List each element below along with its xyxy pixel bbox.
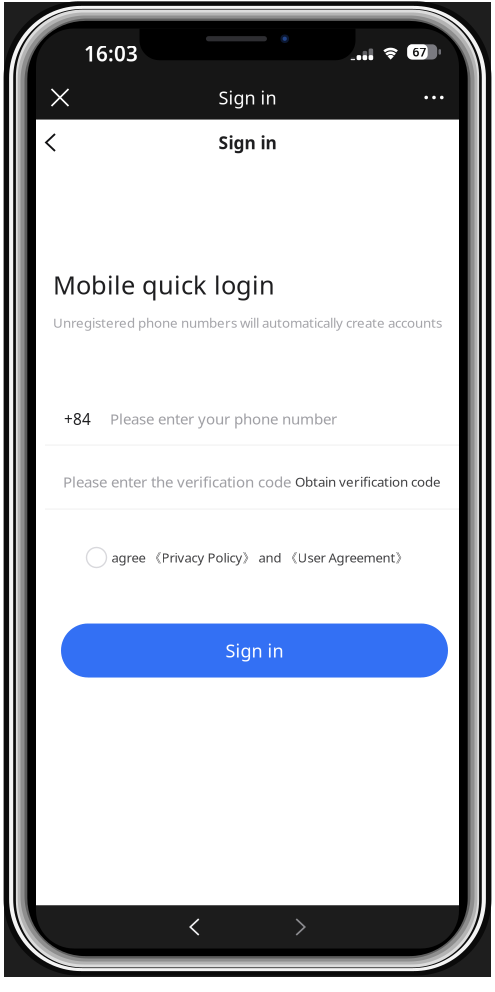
button[interactable]: Back (172, 907, 216, 947)
staticText: Sign in (218, 85, 276, 110)
staticText: Mobile quick login (53, 267, 275, 302)
button[interactable]: Obtain verification code (295, 472, 441, 490)
staticText: agree 《Privacy Policy》 and 《User Agreeme… (111, 549, 408, 566)
button[interactable]: Forward (278, 907, 322, 947)
staticText: 67 (412, 44, 426, 60)
button[interactable]: agree 《Privacy Policy》 and 《User Agreeme… (86, 547, 408, 567)
button[interactable]: More options (411, 75, 457, 119)
staticText: +84 (64, 408, 91, 429)
staticText: Unregistered phone numbers will automati… (53, 313, 442, 332)
button[interactable]: Close (37, 75, 83, 119)
staticText: 16:03 (84, 39, 138, 67)
staticText: Obtain verification code (295, 472, 441, 491)
staticText: Please enter the verification code (63, 471, 291, 492)
staticText: Sign in (225, 638, 283, 663)
staticText: Please enter your phone number (110, 408, 337, 429)
button[interactable]: Back (36, 128, 80, 156)
staticText: Sign in (218, 131, 276, 154)
button[interactable]: Sign in (61, 623, 448, 677)
